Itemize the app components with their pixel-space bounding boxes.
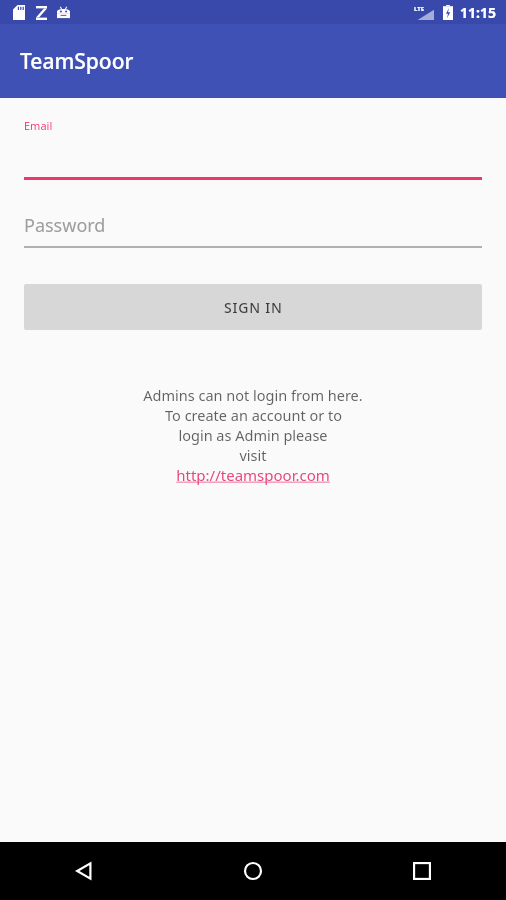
staticText: To create an account or to: [165, 405, 342, 425]
staticText: TeamSpoor: [20, 47, 134, 76]
button[interactable]: Email: [24, 98, 482, 180]
staticText: http://teamspoor.com: [176, 465, 330, 485]
staticText: SIGN IN: [224, 298, 283, 317]
staticText: login as Admin please: [178, 425, 328, 445]
button[interactable]: Password: [24, 206, 482, 248]
button[interactable]: Back: [0, 842, 168, 900]
staticText: Email: [24, 118, 53, 133]
staticText: visit: [239, 445, 267, 465]
staticText: 11:15: [460, 3, 496, 22]
button[interactable]: Recent apps: [337, 842, 506, 900]
staticText: LTE: [414, 5, 425, 13]
button[interactable]: Home: [168, 842, 337, 900]
staticText: Admins can not login from here.: [143, 385, 363, 405]
staticText: Password: [24, 213, 106, 238]
button[interactable]: SIGN IN: [24, 284, 482, 330]
button[interactable]: http://teamspoor.com: [176, 465, 330, 485]
